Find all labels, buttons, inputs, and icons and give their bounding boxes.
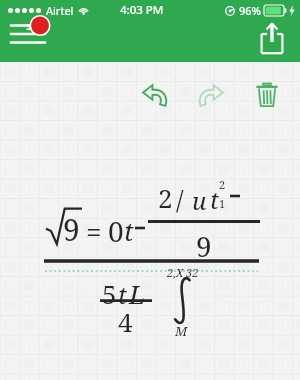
staticText: 2 <box>219 177 226 192</box>
staticText: t <box>118 278 127 311</box>
staticText: 2,X 32 <box>167 265 199 280</box>
button[interactable]: Undo <box>138 78 172 112</box>
staticText: u <box>192 184 207 217</box>
staticText: 0 <box>108 212 124 250</box>
staticText: 2 <box>158 180 173 215</box>
staticText: Airtel <box>46 3 74 18</box>
button[interactable]: Delete <box>250 78 284 112</box>
staticText: 3 <box>22 20 36 32</box>
staticText: / <box>176 181 184 216</box>
staticText: 96% <box>239 3 261 18</box>
button[interactable]: Menu <box>6 12 50 56</box>
button[interactable]: Share <box>252 18 292 58</box>
staticText: t <box>124 213 134 248</box>
staticText: 1 <box>219 196 226 211</box>
staticText: 4:03 PM <box>120 2 164 18</box>
staticText: M <box>175 322 188 340</box>
staticText: 9 <box>196 227 212 265</box>
staticText: L <box>129 276 146 311</box>
staticText: 4 <box>118 304 133 339</box>
staticText: = <box>86 212 102 250</box>
button[interactable]: Redo <box>194 78 228 112</box>
staticText: 5 <box>102 276 117 311</box>
staticText: 9 <box>63 209 80 250</box>
staticText: t <box>210 183 219 216</box>
